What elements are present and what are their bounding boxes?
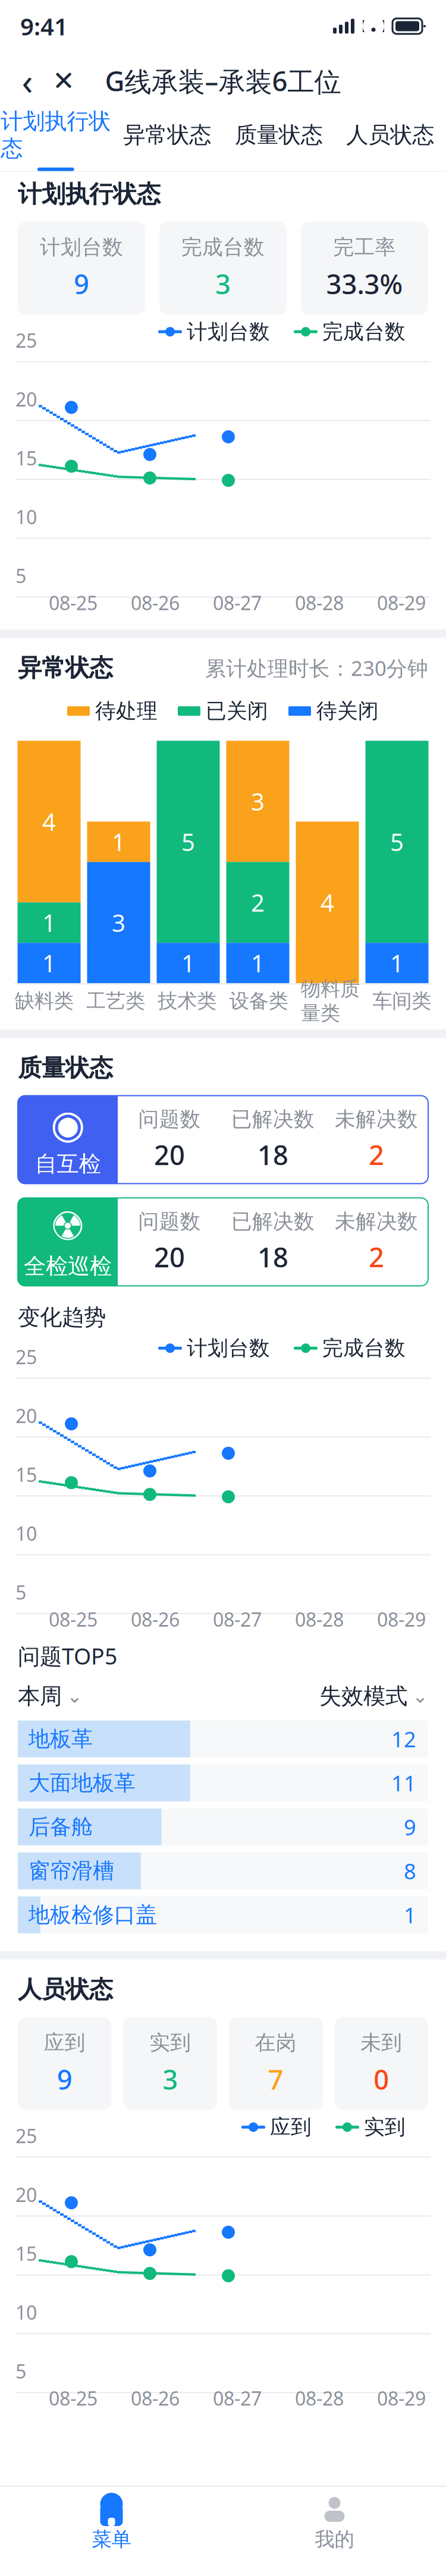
staticText: 08-26	[131, 2386, 180, 2411]
staticText: 在岗	[255, 2030, 297, 2055]
staticText: 我的	[315, 2527, 354, 2552]
button[interactable]: Close	[45, 60, 82, 102]
staticText: 地板革	[29, 1726, 93, 1752]
staticText: ◉	[51, 1102, 85, 1147]
staticText: 全检巡检	[24, 1253, 112, 1280]
staticText: 08-25	[49, 590, 98, 615]
staticText: 9	[404, 1813, 416, 1841]
button[interactable]: Back	[10, 60, 45, 102]
staticText: 物料质量类	[301, 977, 360, 1025]
staticText: 已解决数	[231, 1209, 315, 1234]
staticText: 08-26	[131, 1607, 180, 1632]
staticText: 未解决数	[335, 1209, 418, 1234]
button[interactable]: 我的	[223, 2487, 446, 2552]
staticText: 问题数	[138, 1209, 201, 1234]
button[interactable]: 菜单	[0, 2487, 223, 2552]
staticText: ✕	[52, 66, 75, 96]
button[interactable]: ☢	[0, 1198, 446, 1286]
staticText: 窗帘滑槽	[29, 1858, 114, 1884]
staticText: 08-25	[49, 1607, 98, 1632]
staticText: 已关闭	[206, 698, 268, 724]
staticText: 已解决数	[231, 1107, 315, 1132]
staticText: 5	[390, 826, 404, 858]
staticText: 计划台数	[187, 319, 270, 344]
staticText: 0	[374, 2061, 389, 2097]
staticText: 完成台数	[322, 319, 406, 344]
staticText: 质量状态	[18, 1053, 113, 1083]
staticText: 20	[15, 1403, 37, 1428]
staticText: 异常状态	[123, 121, 211, 149]
staticText: 15	[15, 2241, 37, 2266]
staticText: 应到	[44, 2030, 86, 2055]
staticText: 未到	[360, 2030, 402, 2055]
staticText: 25	[15, 1344, 37, 1369]
staticText: 08-26	[131, 590, 180, 615]
staticText: 质量状态	[235, 121, 323, 149]
staticText: 1	[42, 907, 56, 938]
staticText: 25	[15, 2123, 37, 2148]
staticText: ⌄	[412, 1685, 428, 1707]
button[interactable]: 本周	[18, 1683, 83, 1710]
staticText: 9	[57, 2061, 72, 2097]
staticText: 人员状态	[18, 1975, 113, 2004]
staticText: 33.3%	[326, 266, 403, 302]
button[interactable]: 计划执行状态	[0, 102, 111, 171]
staticText: 20	[15, 387, 37, 412]
staticText: 5	[15, 1580, 26, 1605]
staticText: 技术类	[158, 989, 217, 1013]
staticText: 异常状态	[18, 653, 113, 682]
button[interactable]: 质量状态	[223, 115, 334, 158]
staticText: 08-29	[377, 590, 426, 615]
staticText: 问题数	[138, 1107, 201, 1132]
staticText: 本周	[18, 1683, 62, 1710]
staticText: 08-28	[295, 590, 344, 615]
staticText: 1	[42, 947, 56, 979]
staticText: 2	[251, 887, 265, 918]
staticText: G线承装–承装6工位	[105, 63, 341, 99]
staticText: 失效模式	[319, 1683, 407, 1710]
staticText: 5	[181, 826, 195, 858]
staticText: 计划执行状态	[1, 108, 111, 162]
button[interactable]: ◉	[0, 1096, 446, 1184]
staticText: ‹	[22, 57, 33, 105]
staticText: 08-27	[213, 2386, 262, 2411]
staticText: 车间类	[372, 989, 431, 1013]
staticText: 25	[15, 328, 37, 353]
button[interactable]: 人员状态	[334, 115, 446, 158]
staticText: 18	[257, 1137, 288, 1173]
staticText: 2	[369, 1137, 384, 1173]
staticText: 2	[369, 1239, 384, 1275]
staticText: 08-27	[213, 1607, 262, 1632]
staticText: 15	[15, 1462, 37, 1487]
staticText: 计划台数	[187, 1336, 270, 1361]
staticText: 地板检修口盖	[29, 1902, 157, 1928]
staticText: 完工率	[333, 235, 396, 260]
staticText: 5	[15, 563, 26, 588]
staticText: 问题TOP5	[18, 1641, 117, 1671]
staticText: 08-25	[49, 2386, 98, 2411]
button[interactable]: 失效模式	[319, 1683, 428, 1710]
staticText: 7	[268, 2061, 284, 2097]
staticText: 缺料类	[15, 989, 74, 1013]
staticText: 08-27	[213, 590, 262, 615]
staticText: 菜单	[92, 2527, 131, 2552]
staticText: 3	[112, 907, 125, 938]
staticText: 08-29	[377, 1607, 426, 1632]
staticText: 20	[154, 1137, 185, 1173]
staticText: 4	[321, 887, 334, 918]
staticText: 1	[112, 826, 125, 858]
staticText: 15	[15, 445, 37, 471]
staticText: 08-29	[377, 2386, 426, 2411]
staticText: 20	[15, 2182, 37, 2207]
staticText: ⌄	[67, 1685, 83, 1707]
staticText: 10	[15, 504, 37, 530]
staticText: 后备舱	[29, 1814, 93, 1840]
staticText: 实到	[149, 2030, 191, 2055]
staticText: 完成台数	[181, 235, 265, 260]
button[interactable]: 异常状态	[111, 115, 223, 158]
staticText: 工艺类	[86, 989, 145, 1013]
staticText: 20	[154, 1239, 185, 1275]
staticText: 9:41	[20, 10, 68, 42]
staticText: 人员状态	[346, 121, 434, 149]
staticText: 10	[15, 1521, 37, 1546]
